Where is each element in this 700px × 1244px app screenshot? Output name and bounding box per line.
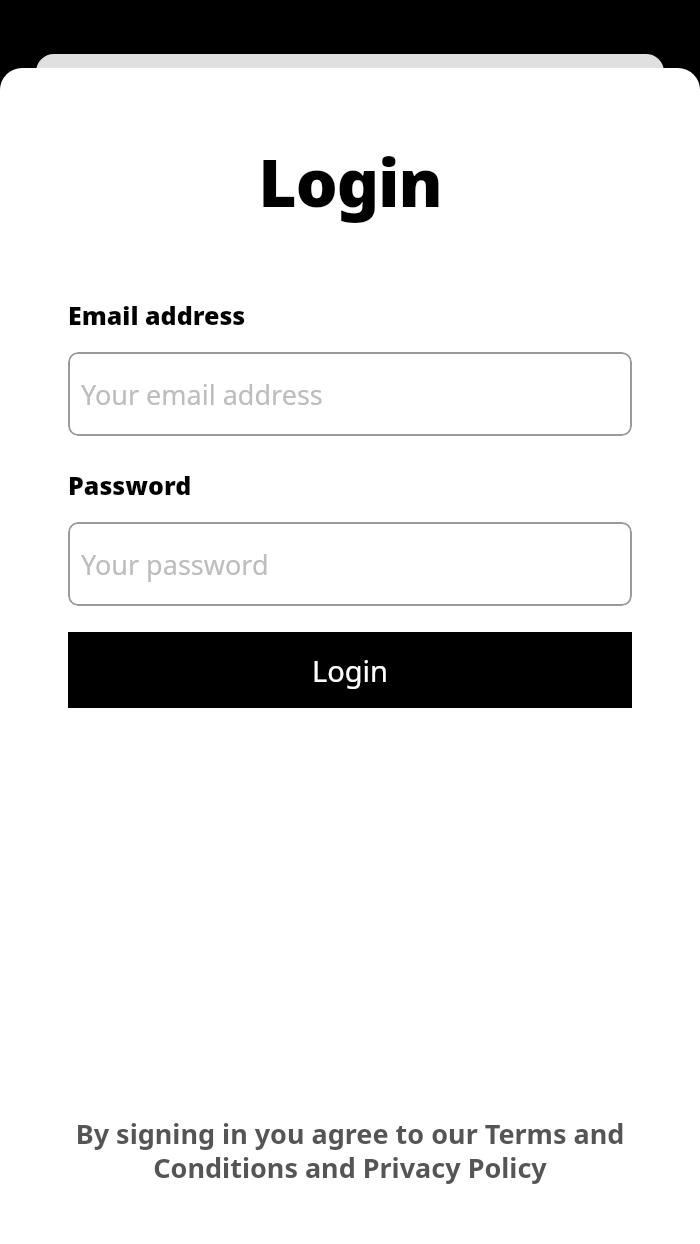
staticText: Your email address <box>81 376 323 413</box>
button[interactable]: Login <box>68 632 632 708</box>
button[interactable]: By signing in you agree to our Terms and… <box>72 1115 628 1186</box>
staticText: Your password <box>81 546 269 583</box>
button[interactable]: Your email address <box>68 352 632 436</box>
staticText: Login <box>0 136 700 226</box>
staticText: Password <box>68 468 192 502</box>
button[interactable]: Your password <box>68 522 632 606</box>
staticText: By signing in you agree to our Terms and… <box>72 1115 628 1186</box>
staticText: Login <box>312 651 388 690</box>
staticText: Email address <box>68 298 246 332</box>
